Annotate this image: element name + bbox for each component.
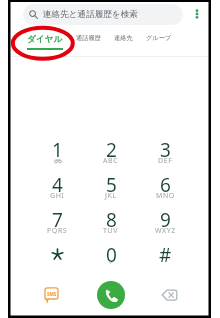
button[interactable]: 連絡先と通話履歴を検索 bbox=[23, 4, 183, 25]
button[interactable]: グループ bbox=[146, 26, 172, 42]
button[interactable]: 通話履歴 bbox=[76, 26, 101, 42]
button[interactable]: 5 bbox=[84, 171, 138, 206]
staticText: 9 bbox=[160, 207, 171, 233]
staticText: GHI bbox=[50, 191, 65, 201]
button[interactable]: Backspace bbox=[140, 276, 199, 313]
button[interactable]: 9 bbox=[138, 206, 192, 241]
staticText: 8 bbox=[106, 207, 117, 233]
staticText: 通話履歴 bbox=[76, 34, 101, 42]
button[interactable]: Send SMS bbox=[22, 276, 81, 313]
button[interactable]: More options bbox=[189, 6, 205, 22]
staticText: 4 bbox=[52, 172, 63, 198]
button[interactable]: # bbox=[138, 241, 192, 276]
staticText: JKL bbox=[105, 191, 117, 201]
button[interactable]: 1 bbox=[31, 136, 84, 171]
button[interactable]: 2 bbox=[84, 136, 138, 171]
staticText: MNO bbox=[156, 191, 175, 201]
staticText: PQRS bbox=[47, 226, 68, 236]
staticText: 3 bbox=[160, 137, 171, 163]
staticText: 2 bbox=[106, 137, 117, 163]
staticText: SMS bbox=[47, 291, 57, 297]
staticText: ABC bbox=[103, 156, 119, 166]
staticText: グループ bbox=[146, 34, 172, 42]
button[interactable]: 3 bbox=[138, 136, 192, 171]
staticText: 0 bbox=[106, 242, 117, 268]
staticText: ダイヤル bbox=[27, 34, 63, 45]
staticText: 5 bbox=[106, 172, 117, 198]
staticText: # bbox=[159, 242, 172, 268]
button[interactable]: Call bbox=[97, 281, 125, 309]
staticText: 連絡先と通話履歴を検索 bbox=[43, 9, 138, 20]
staticText: 1 bbox=[52, 137, 63, 163]
button[interactable]: 6 bbox=[138, 171, 192, 206]
button[interactable]: ダイヤル bbox=[27, 26, 63, 50]
button[interactable]: 4 bbox=[31, 171, 84, 206]
staticText: 6 bbox=[160, 172, 171, 198]
staticText: 連絡先 bbox=[114, 34, 133, 42]
staticText: 7 bbox=[52, 207, 63, 233]
staticText: WXYZ bbox=[155, 226, 176, 236]
button[interactable]: 8 bbox=[84, 206, 138, 241]
staticText: + bbox=[109, 259, 113, 267]
staticText: TUV bbox=[103, 226, 119, 236]
button[interactable] bbox=[31, 241, 84, 276]
button[interactable]: 0 bbox=[84, 241, 138, 276]
staticText: DEF bbox=[158, 156, 173, 166]
button[interactable]: 連絡先 bbox=[114, 26, 133, 42]
button[interactable]: 7 bbox=[31, 206, 84, 241]
